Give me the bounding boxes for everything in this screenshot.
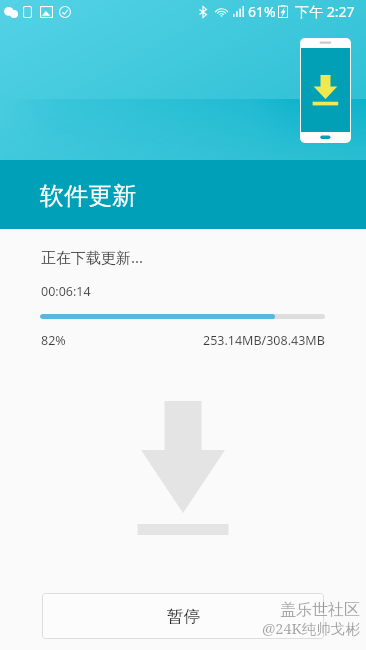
staticText: 00:06:14 xyxy=(41,283,91,300)
staticText: 正在下载更新... xyxy=(41,247,144,267)
staticText: 82% xyxy=(41,332,66,349)
staticText: 盖乐世社区 xyxy=(280,600,360,620)
staticText: 61% xyxy=(248,2,276,21)
staticText: 软件更新 xyxy=(40,181,136,211)
staticText: 暂停 xyxy=(167,606,200,627)
button[interactable]: 暂停 xyxy=(42,593,324,639)
staticText: 253.14MB/308.43MB xyxy=(203,332,325,349)
other: Software update illustration xyxy=(300,38,351,143)
staticText: 下午 2:27 xyxy=(295,2,355,21)
staticText: @24K纯帅戈彬 xyxy=(262,618,360,638)
